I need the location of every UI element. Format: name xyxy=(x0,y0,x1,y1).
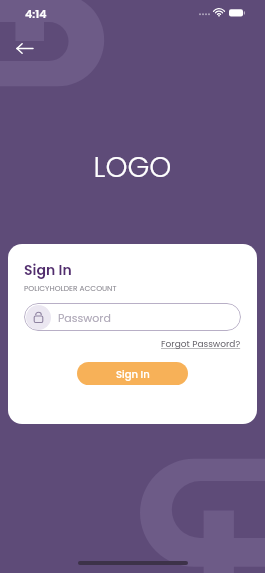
staticText: Forgot Password? xyxy=(161,338,241,351)
button[interactable]: Back xyxy=(8,32,40,64)
staticText: Sign In xyxy=(24,260,72,280)
button[interactable]: Password xyxy=(24,303,241,331)
staticText: LOGO xyxy=(0,148,265,187)
staticText: Sign In xyxy=(116,367,150,381)
staticText: 4:14 xyxy=(25,6,47,21)
staticText: POLICYHOLDER ACCOUNT xyxy=(24,283,117,293)
button[interactable]: Sign In xyxy=(77,362,188,385)
button[interactable]: Forgot Password? xyxy=(161,338,241,351)
staticText: Password xyxy=(58,310,111,325)
